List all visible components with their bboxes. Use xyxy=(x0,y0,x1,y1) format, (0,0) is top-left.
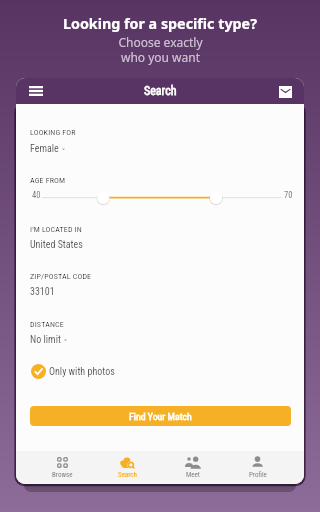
staticText: 40 xyxy=(32,190,41,200)
staticText: I'M LOCATED IN xyxy=(30,225,82,234)
staticText: Search xyxy=(118,471,137,479)
staticText: Choose exactly who you want xyxy=(118,34,203,66)
staticText: Search xyxy=(144,84,177,98)
staticText: Browse xyxy=(52,471,73,479)
button[interactable]: Menu xyxy=(24,79,48,103)
button[interactable]: Meet xyxy=(160,451,225,484)
button[interactable]: No limit xyxy=(30,334,67,346)
staticText: AGE FROM xyxy=(30,176,66,185)
staticText: Female xyxy=(30,143,59,155)
button[interactable]: Search xyxy=(95,451,160,484)
staticText: Only with photos xyxy=(49,366,115,378)
staticText: 70 xyxy=(284,190,293,200)
staticText: United States xyxy=(30,239,83,251)
staticText: 33101 xyxy=(30,286,55,298)
button[interactable]: Profile xyxy=(225,451,290,484)
staticText: DISTANCE xyxy=(30,320,64,329)
staticText: Profile xyxy=(249,471,267,479)
staticText: Looking for a specific type? xyxy=(63,14,257,33)
button[interactable]: United States xyxy=(30,239,83,251)
button[interactable]: Female xyxy=(30,143,65,155)
staticText: ZIP/POSTAL CODE xyxy=(30,272,92,281)
button[interactable]: Only with photos xyxy=(31,364,115,379)
button[interactable]: Messages xyxy=(275,82,295,102)
staticText: No limit xyxy=(30,334,61,346)
staticText: LOOKING FOR xyxy=(30,128,76,137)
staticText: Meet xyxy=(186,471,200,479)
button[interactable]: 33101 xyxy=(30,286,55,298)
staticText: Find Your Match xyxy=(129,411,192,422)
button[interactable]: Find Your Match xyxy=(30,406,291,426)
button[interactable]: Browse xyxy=(30,451,95,484)
